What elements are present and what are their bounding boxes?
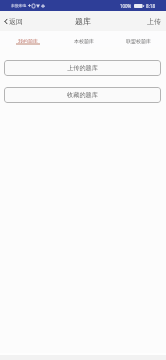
staticText: 本校题库 (74, 38, 94, 44)
staticText: 联盟校题库 (126, 38, 151, 44)
staticText: 未接来电 (11, 3, 27, 8)
staticText: 100% (120, 3, 132, 9)
staticText: 收藏的题库 (67, 91, 98, 99)
button[interactable]: 返回 (2, 13, 25, 30)
staticText: 上传 (147, 17, 161, 26)
staticText: 题库 (75, 16, 91, 26)
staticText: 返回 (9, 17, 23, 26)
button[interactable]: 上传的题库 (4, 60, 161, 76)
button[interactable]: 收藏的题库 (4, 87, 161, 103)
staticText: 上传的题库 (67, 64, 98, 72)
staticText: 8:18 (146, 3, 156, 9)
button[interactable]: 上传 (145, 13, 163, 30)
button[interactable]: 我的题库 (0, 31, 56, 47)
button[interactable]: 联盟校题库 (111, 31, 166, 47)
staticText: 我的题库 (18, 38, 38, 44)
button[interactable]: 本校题库 (56, 31, 111, 47)
